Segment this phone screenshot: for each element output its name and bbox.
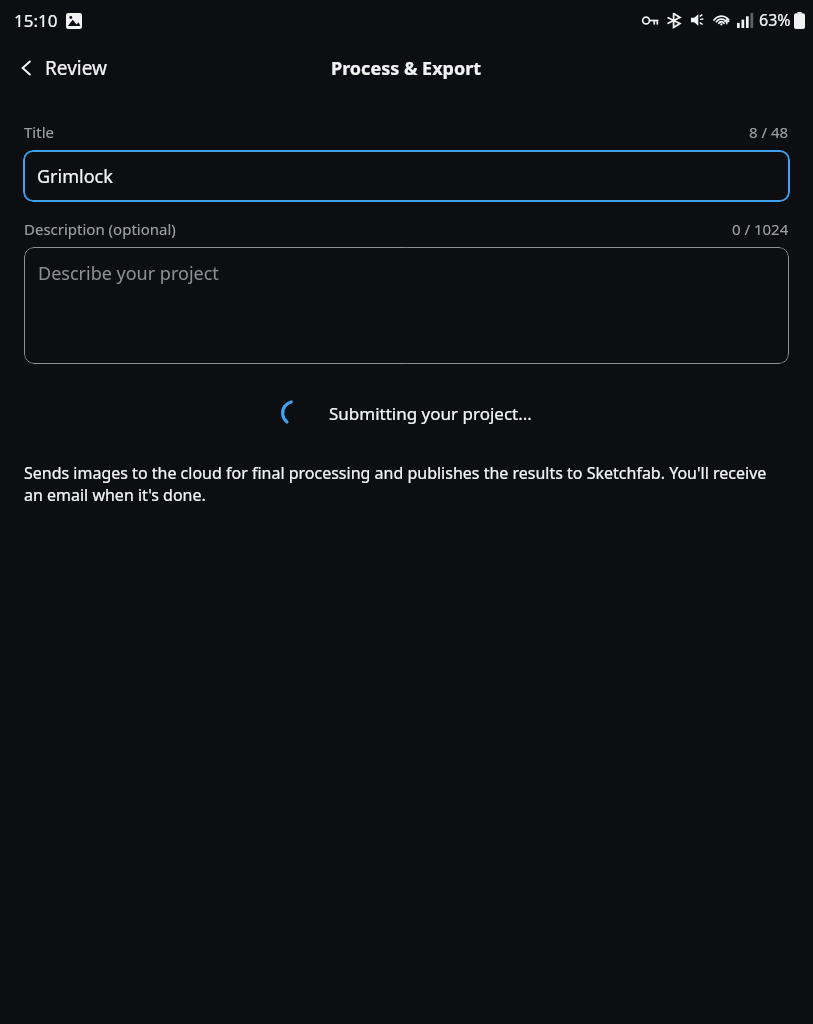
staticText: Process & Export [331, 56, 482, 81]
button[interactable]: Review [10, 49, 115, 87]
staticText: 8 / 48 [749, 122, 789, 142]
staticText: Description (optional) [24, 219, 176, 239]
staticText: 0 / 1024 [732, 219, 789, 239]
staticText: Sends images to the cloud for final proc… [24, 462, 789, 506]
staticText: Title [24, 122, 54, 142]
button[interactable]: Describe your project [24, 247, 789, 364]
staticText: Grimlock [37, 164, 113, 189]
staticText: Review [45, 55, 107, 81]
staticText: Submitting your project... [329, 402, 532, 425]
staticText: 15:10 [14, 9, 58, 32]
staticText: Describe your project [38, 261, 219, 286]
staticText: 63% [759, 9, 791, 31]
button[interactable]: Grimlock [23, 150, 790, 202]
